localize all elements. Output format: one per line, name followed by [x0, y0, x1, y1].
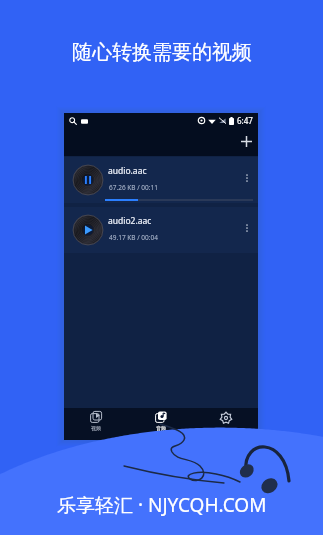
button[interactable]: Audio [128, 408, 193, 440]
button[interactable]: Settings [193, 408, 258, 440]
staticText: 49.17 KB / 00:04 [109, 233, 158, 242]
button[interactable]: audio.aac [64, 157, 258, 203]
staticText: 随心转换需要的视频 [72, 40, 252, 65]
staticText: 音频 [156, 425, 166, 431]
staticText: audio.aac [108, 165, 147, 177]
button[interactable]: Video [64, 408, 128, 440]
staticText: 视频 [91, 425, 101, 431]
staticText: 67.26 KB / 00:11 [109, 183, 158, 192]
staticText: 乐享轻汇 · NJYCQH.COM [57, 492, 267, 518]
button[interactable]: More options [240, 221, 254, 235]
staticText: 6:47 [237, 115, 253, 126]
staticText: audio2.aac [108, 215, 152, 227]
button[interactable]: audio2.aac [64, 207, 258, 253]
button[interactable]: Add [236, 131, 256, 151]
button[interactable]: More options [240, 171, 254, 185]
